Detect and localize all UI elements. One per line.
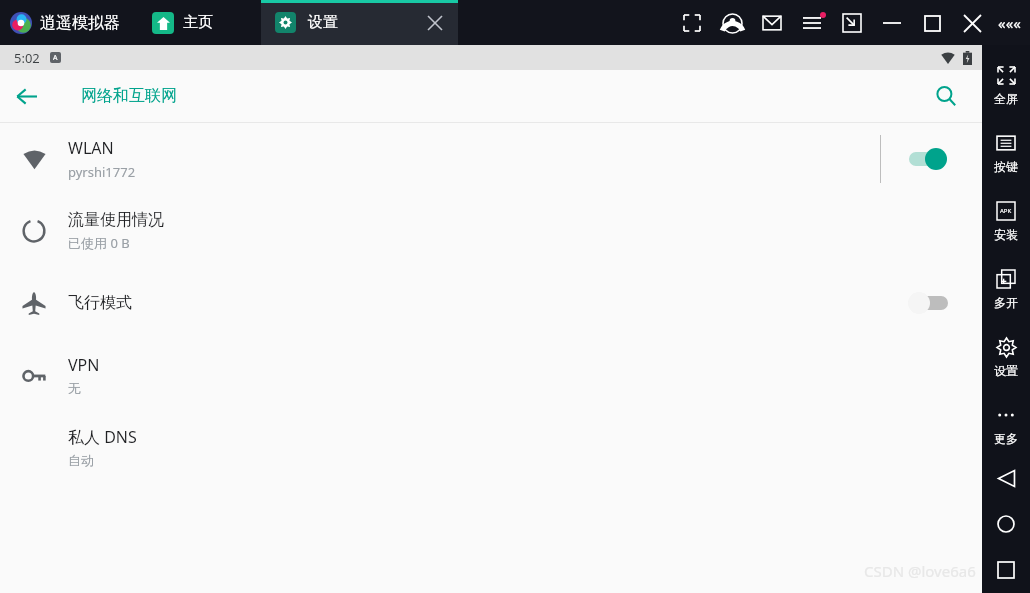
staticText: 私人 DNS — [68, 426, 137, 448]
button[interactable]: Minimize — [872, 3, 912, 43]
staticText: 设置 — [994, 363, 1018, 378]
staticText: 网络和互联网 — [81, 86, 177, 106]
button[interactable]: 私人 DNS — [0, 411, 982, 483]
button[interactable]: Multi instance — [982, 259, 1030, 327]
button[interactable]: 主页 — [146, 0, 219, 45]
button[interactable]: Settings — [982, 327, 1030, 395]
staticText: CSDN @love6a6 — [864, 561, 976, 581]
button[interactable]: Recents — [982, 555, 1030, 585]
staticText: WLAN — [68, 137, 114, 159]
staticText: 按键 — [994, 159, 1018, 174]
staticText: 多开 — [994, 295, 1018, 310]
button[interactable]: Collapse — [992, 6, 1026, 40]
button[interactable]: Account — [712, 3, 752, 43]
button[interactable]: Screenshot — [672, 3, 712, 43]
staticText: APK — [1000, 207, 1012, 215]
button[interactable]: Close tab — [422, 10, 448, 36]
staticText: 无 — [68, 380, 81, 396]
button[interactable]: Close — [952, 3, 992, 43]
staticText: 飞行模式 — [68, 293, 132, 313]
button[interactable]: Mail — [752, 3, 792, 43]
staticText: 更多 — [994, 431, 1018, 446]
button[interactable]: Back — [982, 463, 1030, 493]
button[interactable]: VPN — [0, 339, 982, 411]
staticText: 5:02 — [14, 49, 40, 67]
button[interactable]: Menu — [792, 3, 832, 43]
button[interactable]: 设置 — [261, 0, 458, 45]
staticText: 设置 — [308, 13, 338, 32]
button[interactable]: 流量使用情况 — [0, 195, 982, 267]
button[interactable]: 飞行模式 — [0, 267, 982, 339]
button[interactable]: Minimize window — [832, 3, 872, 43]
button[interactable]: Key mapping — [982, 123, 1030, 191]
staticText: 逍遥模拟器 — [40, 13, 120, 33]
button[interactable]: WLAN — [0, 123, 982, 195]
button[interactable]: Home — [982, 509, 1030, 539]
button[interactable]: Airplane mode toggle — [906, 286, 952, 320]
staticText: 主页 — [183, 13, 213, 32]
staticText: 自动 — [68, 452, 94, 468]
staticText: 已使用 0 B — [68, 234, 130, 252]
button[interactable]: More — [982, 395, 1030, 463]
staticText: 流量使用情况 — [68, 210, 164, 230]
button[interactable]: WLAN toggle — [907, 142, 953, 176]
staticText: 全屏 — [994, 91, 1018, 106]
button[interactable]: Maximize — [912, 3, 952, 43]
button[interactable]: Install APK — [982, 191, 1030, 259]
button[interactable]: Search — [926, 76, 966, 116]
staticText: VPN — [68, 354, 100, 376]
staticText: pyrshi1772 — [68, 163, 136, 181]
staticText: 安装 — [994, 227, 1018, 242]
staticText: A — [53, 53, 58, 63]
button[interactable]: Fullscreen — [982, 55, 1030, 123]
staticText: ««« — [998, 13, 1021, 33]
button[interactable]: Back — [0, 70, 52, 122]
